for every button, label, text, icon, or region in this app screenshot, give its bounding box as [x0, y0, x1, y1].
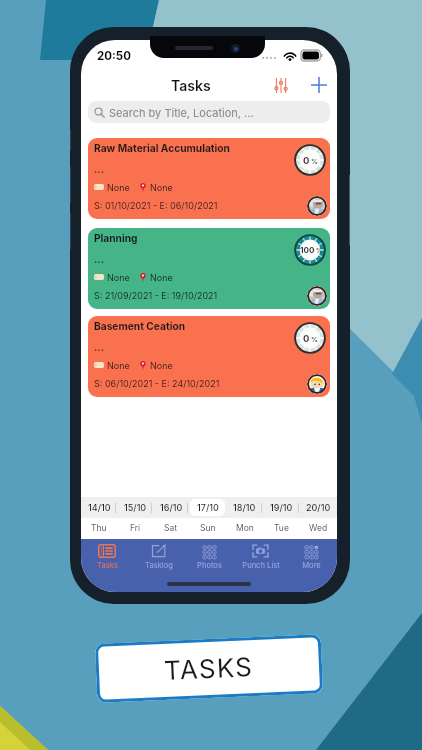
button[interactable]: Tasks	[81, 539, 133, 575]
staticText: %	[311, 157, 318, 165]
staticText: Fri	[130, 523, 141, 533]
staticText: 17/10	[197, 502, 219, 513]
staticText: %	[311, 335, 318, 343]
staticText: 15/10	[124, 502, 147, 513]
staticText: Search by Title, Location, ...	[109, 106, 254, 119]
button[interactable]: Search by Title, Location, ...	[88, 101, 330, 123]
button[interactable]: Basement Ceation	[88, 316, 330, 397]
staticText: ...	[94, 163, 105, 175]
button[interactable]: Raw Material Accumulation	[88, 138, 330, 219]
button[interactable]: Photos	[184, 539, 235, 575]
staticText: Raw Material Accumulation	[94, 142, 230, 154]
staticText: ...	[94, 253, 105, 265]
staticText: 14/10	[88, 502, 111, 513]
staticText: %	[316, 247, 322, 254]
staticText: 20/10	[306, 502, 331, 513]
button[interactable]: More	[286, 539, 337, 575]
button[interactable]: Add task	[306, 72, 332, 98]
staticText: 0	[303, 155, 310, 166]
staticText: Thu	[91, 523, 107, 533]
staticText: None	[150, 360, 173, 371]
staticText: Tasklog	[145, 561, 173, 570]
button[interactable]: 15/10	[118, 499, 152, 516]
staticText: 18/10	[233, 502, 256, 513]
staticText: S: 21/09/2021 - E: 19/10/2021	[94, 290, 218, 301]
button[interactable]: 16/10	[154, 499, 188, 516]
staticText: 0	[303, 333, 310, 344]
staticText: 20:50	[97, 49, 131, 63]
staticText: Photos	[197, 561, 222, 570]
staticText: None	[107, 272, 130, 283]
staticText: Sun	[200, 523, 216, 533]
staticText: More	[302, 561, 321, 570]
button[interactable]: Filter	[268, 72, 294, 98]
staticText: Tasks	[97, 561, 118, 570]
staticText: S: 01/10/2021 - E: 06/10/2021	[94, 200, 218, 211]
button[interactable]: 19/10	[264, 499, 299, 516]
staticText: None	[107, 360, 130, 371]
staticText: 19/10	[270, 502, 293, 513]
staticText: Punch List	[242, 561, 280, 570]
staticText: Tasks	[171, 77, 211, 94]
button[interactable]: 17/10	[190, 499, 225, 516]
staticText: S: 06/10/2021 - E: 24/10/2021	[94, 378, 220, 389]
staticText: Planning	[94, 232, 138, 244]
staticText: ...	[94, 341, 105, 353]
button[interactable]: 18/10	[227, 499, 262, 516]
staticText: Basement Ceation	[94, 320, 185, 332]
button[interactable]: 14/10	[82, 499, 116, 516]
button[interactable]: Tasklog	[133, 539, 184, 575]
staticText: Sat	[164, 523, 178, 533]
staticText: Mon	[236, 523, 254, 533]
staticText: None	[150, 272, 173, 283]
staticText: None	[150, 182, 173, 193]
staticText: None	[107, 182, 130, 193]
button[interactable]: 20/10	[301, 499, 336, 516]
button[interactable]: Planning	[88, 228, 330, 309]
button[interactable]: Punch List	[235, 539, 286, 575]
staticText: 100	[300, 245, 315, 255]
staticText: Tue	[274, 523, 289, 533]
staticText: TASKS	[163, 651, 255, 686]
staticText: 16/10	[160, 502, 183, 513]
staticText: Wed	[309, 523, 328, 533]
